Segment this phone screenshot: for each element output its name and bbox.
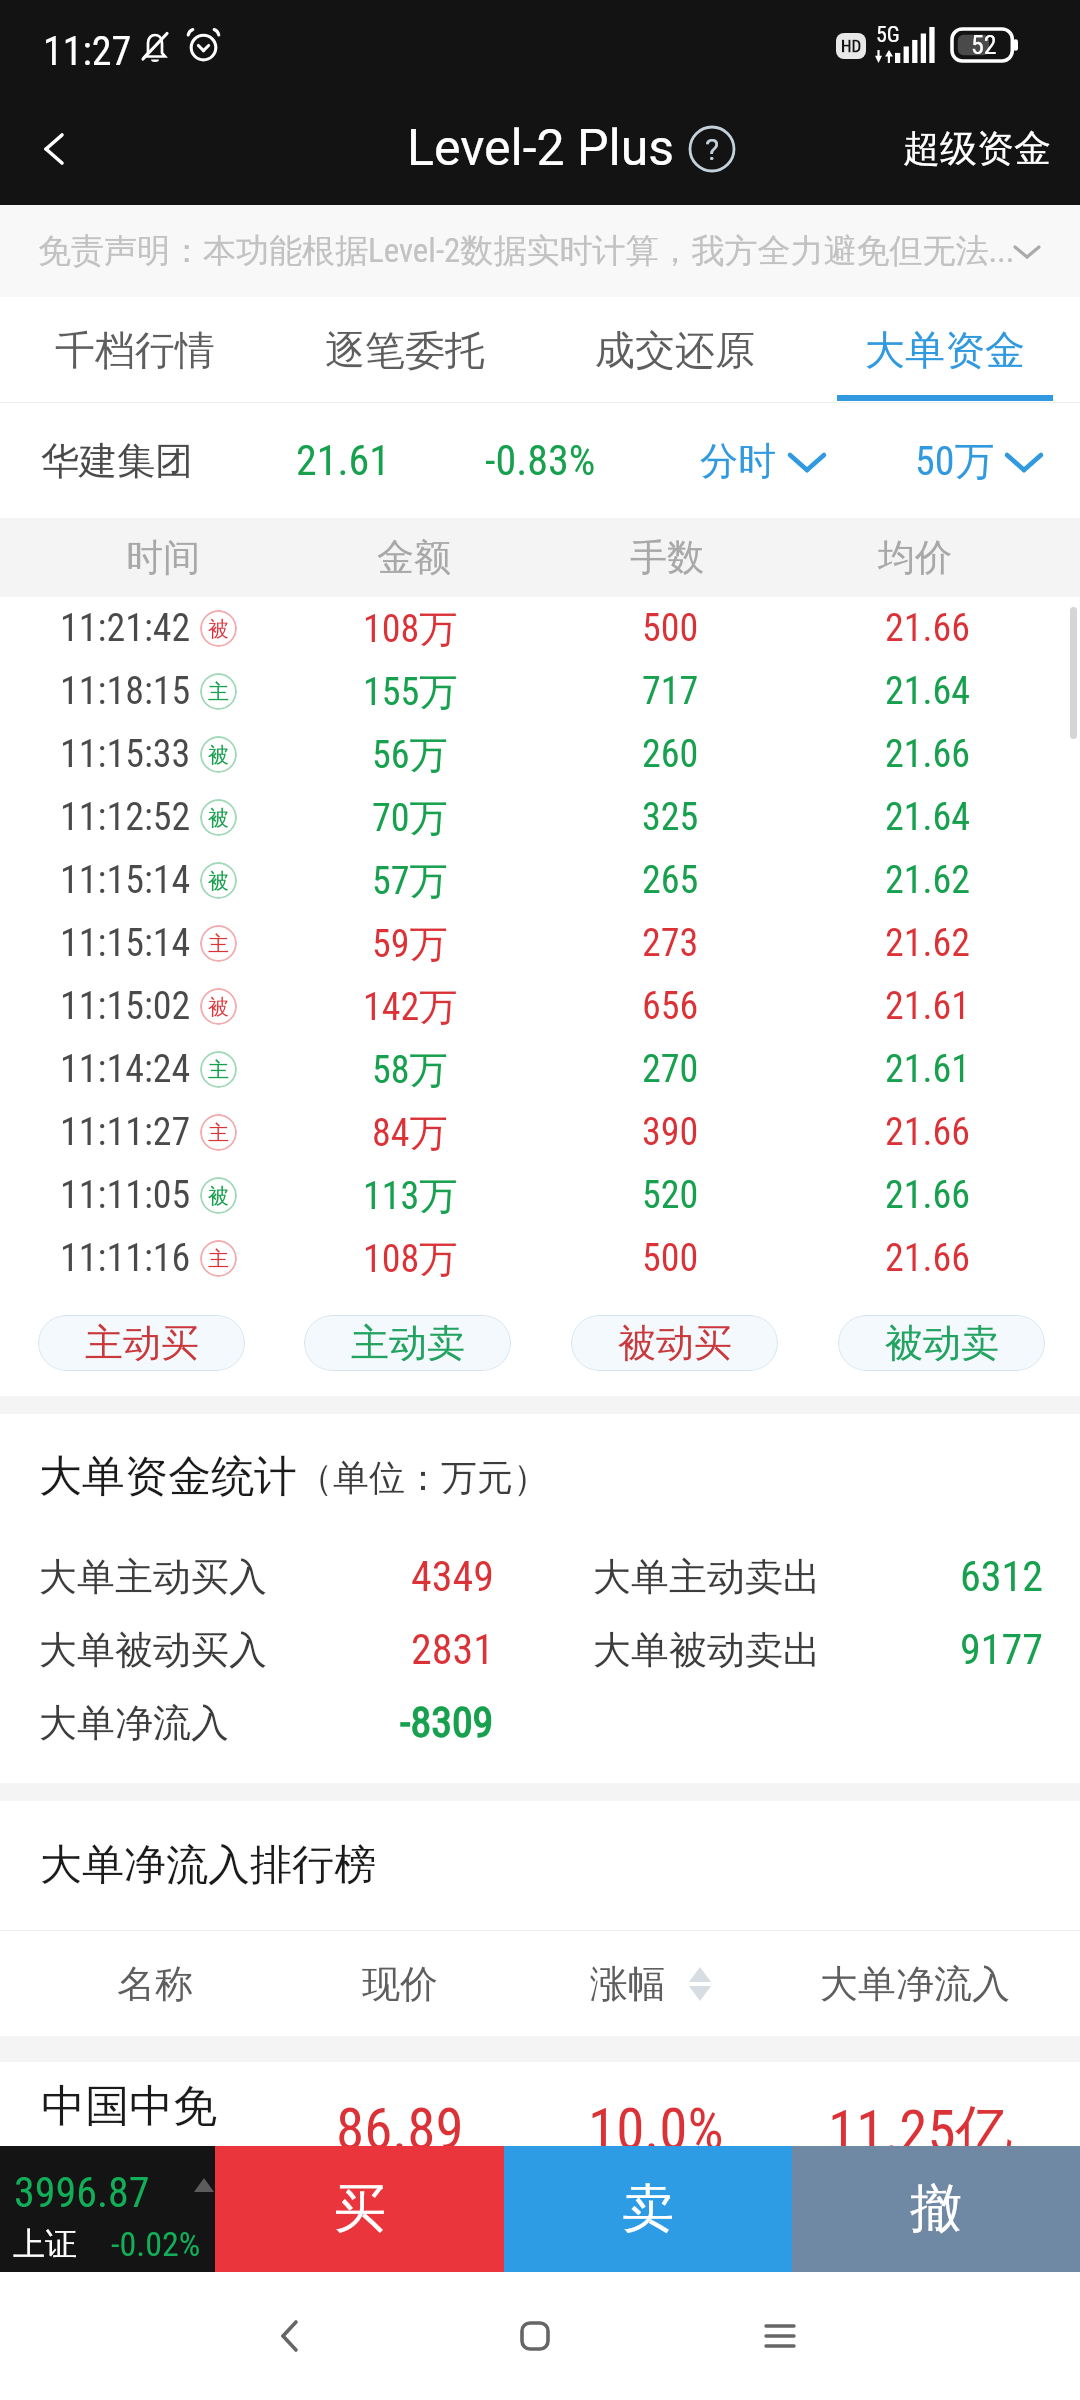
button[interactable]: 11:18:15: [0, 660, 1080, 723]
button[interactable]: 被动卖: [838, 1315, 1045, 1371]
staticText: 11:11:16: [60, 1236, 191, 1281]
button[interactable]: 撤: [792, 2146, 1080, 2272]
button[interactable]: 11:15:02: [0, 975, 1080, 1038]
button[interactable]: 逐笔委托: [270, 297, 540, 403]
staticText: 11:21:42: [60, 606, 191, 651]
staticText: 主动买: [85, 1319, 199, 1367]
staticText: 被动买: [618, 1319, 732, 1367]
button[interactable]: 成交还原: [540, 297, 810, 403]
button[interactable]: 11:12:52: [0, 786, 1080, 849]
staticText: 21.66: [885, 1110, 971, 1155]
button[interactable]: 11:15:14: [0, 912, 1080, 975]
staticText: 逐笔委托: [325, 325, 485, 375]
button[interactable]: 被动买: [571, 1315, 778, 1371]
staticText: Level-2 Plus: [407, 119, 675, 178]
staticText: 被: [208, 742, 229, 768]
staticText: 主: [208, 679, 229, 705]
button[interactable]: 免责声明：本功能根据Level-2数据实时计算，我方全力避免但无法...: [0, 205, 1080, 297]
button[interactable]: 3996.87: [0, 2146, 215, 2272]
staticText: 被: [208, 1183, 229, 1209]
staticText: 时间: [126, 534, 200, 581]
button[interactable]: Home: [445, 2272, 625, 2400]
staticText: 免责声明：本功能根据Level-2数据实时计算，我方全力避免但无法...: [38, 230, 1015, 272]
staticText: 4349: [411, 1552, 494, 1601]
staticText: 大单净流入: [39, 1699, 229, 1747]
staticText: 57万: [372, 857, 448, 905]
button[interactable]: 11:11:27: [0, 1101, 1080, 1164]
staticText: 108万: [363, 605, 458, 653]
staticText: 3996.87: [14, 2168, 150, 2217]
button[interactable]: 卖: [504, 2146, 792, 2272]
button[interactable]: 千档行情: [0, 297, 270, 403]
staticText: 分时: [700, 437, 776, 485]
staticText: 11:11:27: [60, 1110, 191, 1155]
staticText: 大单主动买入: [39, 1553, 267, 1601]
button[interactable]: 大单资金: [810, 297, 1080, 403]
staticText: 390: [642, 1110, 699, 1155]
button[interactable]: 11:11:05: [0, 1164, 1080, 1227]
staticText: 11:18:15: [60, 669, 191, 714]
staticText: 21.64: [885, 795, 971, 840]
staticText: 21.61: [296, 436, 391, 485]
button[interactable]: 11:11:16: [0, 1227, 1080, 1290]
staticText: 601888: [41, 2146, 142, 2186]
button[interactable]: Recents: [690, 2272, 870, 2400]
staticText: 6312: [960, 1552, 1043, 1601]
staticText: 273: [642, 921, 699, 966]
staticText: 21.66: [885, 1173, 971, 1218]
staticText: 270: [642, 1047, 699, 1092]
staticText: 中国中免: [41, 2079, 217, 2134]
staticText: 涨幅: [590, 1960, 666, 2008]
staticText: 大单资金统计: [39, 1450, 297, 1504]
staticText: 均价: [878, 534, 952, 581]
staticText: 11:15:14: [60, 921, 191, 966]
staticText: 名称: [117, 1960, 193, 2008]
button[interactable]: 主动卖: [304, 1315, 511, 1371]
staticText: 超级资金: [903, 125, 1051, 172]
button[interactable]: 买: [215, 2146, 504, 2272]
staticText: 56万: [372, 731, 448, 779]
staticText: 21.62: [885, 921, 971, 966]
staticText: 265: [642, 858, 699, 903]
button[interactable]: Back: [0, 92, 110, 205]
staticText: 被: [208, 805, 229, 831]
staticText: 被动卖: [885, 1319, 999, 1367]
staticText: 11.25亿: [828, 2096, 1013, 2168]
staticText: 11:14:24: [60, 1047, 191, 1092]
button[interactable]: 分时: [700, 403, 828, 518]
staticText: 11:15:02: [60, 984, 191, 1029]
button[interactable]: Level-2 Plus: [407, 119, 736, 178]
staticText: 上证: [13, 2224, 77, 2264]
staticText: 58万: [372, 1046, 448, 1094]
button[interactable]: 涨幅: [590, 1931, 711, 2036]
staticText: 撤: [910, 2176, 962, 2242]
staticText: 现价: [362, 1960, 438, 2008]
staticText: 52: [971, 30, 997, 60]
staticText: 21.61: [885, 1047, 971, 1092]
staticText: 主: [208, 1057, 229, 1083]
staticText: -0.02%: [111, 2224, 201, 2264]
staticText: 108万: [363, 1235, 458, 1283]
button[interactable]: 50万: [915, 403, 1045, 518]
button[interactable]: 11:14:24: [0, 1038, 1080, 1101]
staticText: 21.62: [885, 858, 971, 903]
button[interactable]: 中国中免: [0, 2062, 1080, 2222]
staticText: 500: [642, 606, 699, 651]
staticText: 5G: [876, 22, 900, 48]
staticText: 520: [642, 1173, 699, 1218]
button[interactable]: 11:15:33: [0, 723, 1080, 786]
button[interactable]: Back: [200, 2272, 380, 2400]
staticText: 500: [642, 1236, 699, 1281]
button[interactable]: 11:15:14: [0, 849, 1080, 912]
staticText: 86.89: [336, 2096, 464, 2163]
staticText: 大单净流入: [820, 1960, 1010, 2008]
button[interactable]: 华建集团: [41, 437, 193, 485]
staticText: 成交还原: [595, 325, 755, 375]
staticText: 华建集团: [41, 437, 193, 485]
staticText: 大单被动卖出: [593, 1626, 821, 1674]
staticText: 21.66: [885, 606, 971, 651]
staticText: 千档行情: [55, 325, 215, 375]
button[interactable]: 11:21:42: [0, 597, 1080, 660]
button[interactable]: 主动买: [38, 1315, 245, 1371]
button[interactable]: 超级资金: [873, 92, 1080, 205]
